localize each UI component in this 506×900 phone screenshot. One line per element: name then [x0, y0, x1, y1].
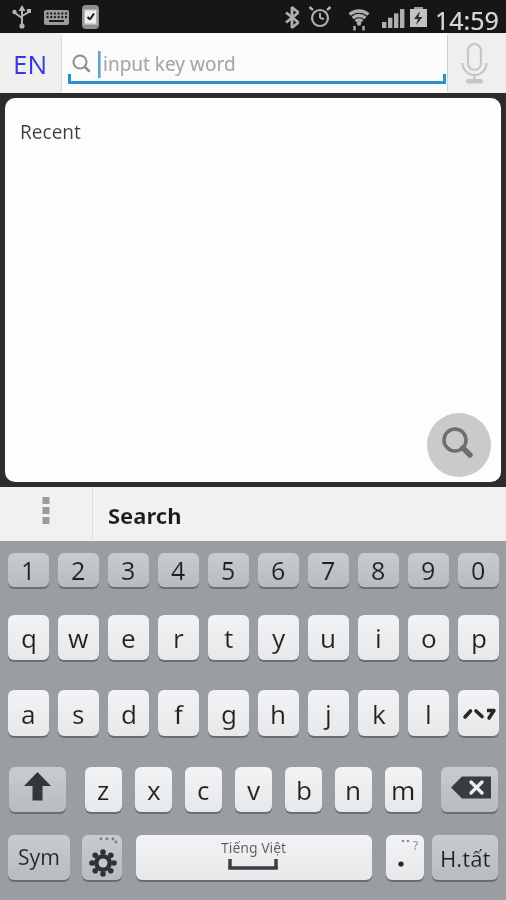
staticText: s [72, 696, 85, 731]
staticText: q [21, 620, 37, 655]
button[interactable]: x [135, 767, 172, 812]
button[interactable]: t [208, 615, 249, 660]
staticText: o [421, 620, 437, 655]
staticText: r [173, 620, 184, 655]
staticText: x [147, 772, 161, 807]
staticText: w [68, 620, 89, 655]
button[interactable]: u [308, 615, 349, 660]
button[interactable] [458, 690, 499, 736]
button[interactable] [441, 767, 498, 812]
button[interactable] [62, 33, 447, 93]
button[interactable] [82, 835, 122, 880]
staticText: 3 [121, 553, 136, 587]
button[interactable]: e [108, 615, 149, 660]
button[interactable]: H.tất [432, 835, 498, 880]
staticText: m [391, 772, 416, 807]
button[interactable]: 6 [258, 553, 299, 587]
staticText: 9 [421, 553, 436, 587]
staticText: 1 [21, 553, 36, 587]
staticText: input key word [103, 51, 236, 77]
staticText: H.tất [440, 843, 491, 873]
staticText: d [121, 696, 137, 731]
button[interactable] [0, 487, 92, 541]
button[interactable]: 2 [58, 553, 99, 587]
staticText: u [320, 620, 337, 655]
button[interactable]: ? [386, 835, 424, 880]
staticText: Recent [20, 119, 81, 145]
button[interactable]: 7 [308, 553, 349, 587]
staticText: i [375, 620, 382, 655]
staticText: 5 [221, 553, 236, 587]
staticText: a [21, 696, 36, 731]
button[interactable]: v [235, 767, 272, 812]
button[interactable]: p [458, 615, 499, 660]
button[interactable]: k [358, 690, 399, 736]
staticText: Sym [18, 843, 60, 872]
staticText: z [97, 772, 110, 807]
button[interactable]: n [335, 767, 372, 812]
button[interactable]: i [358, 615, 399, 660]
button[interactable]: s [58, 690, 99, 736]
button[interactable]: 1 [8, 553, 49, 587]
button[interactable]: 5 [208, 553, 249, 587]
staticText: 7 [321, 553, 336, 587]
staticText: v [247, 772, 261, 807]
button[interactable]: 0 [458, 553, 499, 587]
staticText: k [372, 696, 386, 731]
button[interactable] [448, 33, 506, 93]
button[interactable]: g [208, 690, 249, 736]
button[interactable]: w [58, 615, 99, 660]
button[interactable]: 8 [358, 553, 399, 587]
button[interactable]: c [185, 767, 222, 812]
staticText: 6 [271, 553, 286, 587]
staticText: EN [13, 46, 48, 81]
staticText: c [197, 772, 210, 807]
staticText: g [221, 696, 237, 731]
staticText: 2 [71, 553, 86, 587]
staticText: e [121, 620, 136, 655]
button[interactable]: l [408, 690, 449, 736]
button[interactable]: Search [93, 487, 506, 541]
button[interactable]: 3 [108, 553, 149, 587]
staticText: 0 [471, 553, 486, 587]
staticText: 8 [371, 553, 386, 587]
button[interactable]: m [385, 767, 422, 812]
button[interactable]: Sym [8, 835, 70, 880]
staticText: l [425, 696, 432, 731]
staticText: h [270, 696, 287, 731]
button[interactable]: y [258, 615, 299, 660]
button[interactable]: z [85, 767, 122, 812]
staticText: y [272, 620, 286, 655]
staticText: Tiếng Việt [221, 838, 287, 857]
button[interactable]: a [8, 690, 49, 736]
staticText: n [345, 772, 362, 807]
button[interactable]: h [258, 690, 299, 736]
button[interactable]: r [158, 615, 199, 660]
button[interactable] [9, 767, 66, 812]
staticText: f [174, 696, 183, 731]
staticText: t [224, 620, 234, 655]
staticText: ? [413, 837, 419, 853]
button[interactable]: 9 [408, 553, 449, 587]
button[interactable]: q [8, 615, 49, 660]
staticText: j [325, 696, 332, 731]
staticText: 14:59 [435, 3, 499, 36]
button[interactable]: f [158, 690, 199, 736]
button[interactable]: 4 [158, 553, 199, 587]
staticText: b [296, 772, 312, 807]
button[interactable]: j [308, 690, 349, 736]
button[interactable] [427, 413, 491, 477]
button[interactable]: o [408, 615, 449, 660]
button[interactable]: b [285, 767, 322, 812]
button[interactable]: EN [0, 33, 61, 93]
staticText: Search [108, 500, 182, 530]
button[interactable]: Tiếng Việt [136, 835, 372, 880]
staticText: p [471, 620, 487, 655]
staticText: 4 [171, 553, 186, 587]
button[interactable]: d [108, 690, 149, 736]
